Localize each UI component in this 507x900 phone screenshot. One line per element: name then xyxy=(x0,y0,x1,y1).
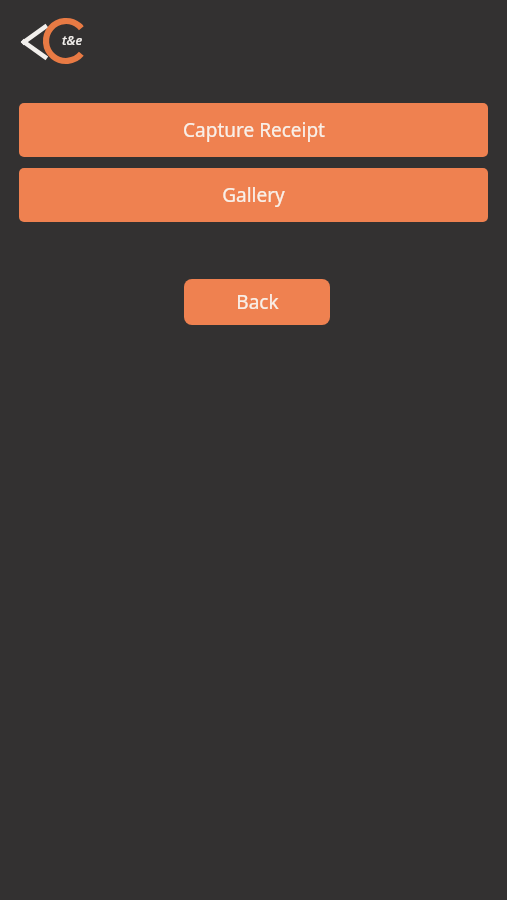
staticText: Gallery xyxy=(222,182,285,208)
button[interactable]: Capture Receipt xyxy=(19,103,488,157)
staticText: t&e xyxy=(62,31,83,49)
button[interactable]: Gallery xyxy=(19,168,488,222)
button[interactable]: Back to home xyxy=(18,16,98,68)
staticText: Back xyxy=(236,289,279,315)
button[interactable]: Back xyxy=(184,279,330,325)
staticText: Capture Receipt xyxy=(183,117,325,143)
